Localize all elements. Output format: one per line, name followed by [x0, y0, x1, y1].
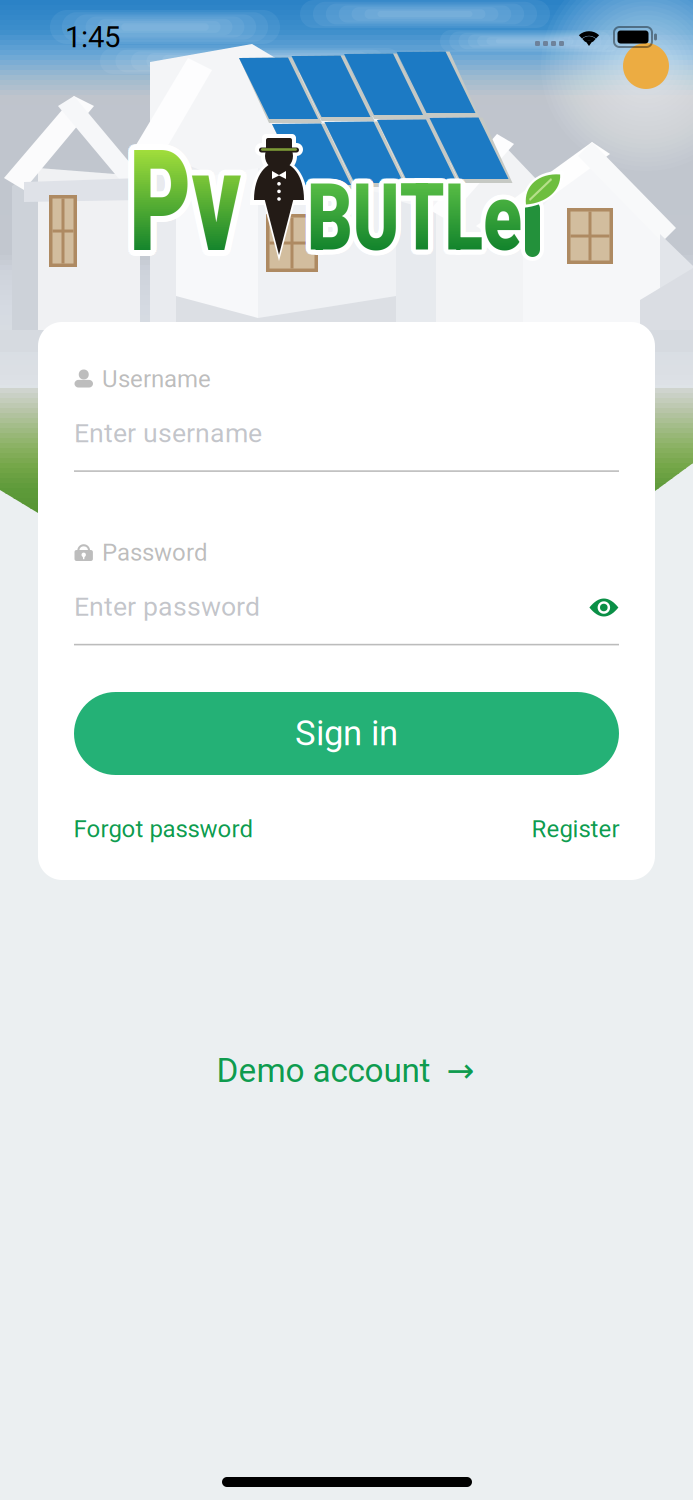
button[interactable]: Sign in — [74, 692, 619, 775]
staticText: BUTLe — [310, 167, 593, 276]
staticText: BUTLe — [303, 166, 586, 275]
staticText: Pv — [134, 115, 300, 281]
staticText: Pv — [125, 124, 291, 289]
button[interactable]: Forgot password — [74, 815, 254, 843]
button[interactable]: Demo account → — [216, 1051, 474, 1090]
staticText: Pv — [124, 122, 290, 288]
staticText: Password — [102, 538, 208, 567]
staticText: Forgot password — [74, 815, 254, 843]
staticText: Pv — [123, 119, 289, 285]
staticText: BUTLe — [311, 166, 594, 275]
staticText: BUTLe — [310, 159, 593, 268]
staticText: 1:45 — [65, 20, 120, 54]
staticText: BUTLe — [305, 168, 588, 277]
button[interactable]: Register — [531, 815, 619, 843]
staticText: Enter password — [74, 591, 260, 622]
staticText: Pv — [125, 114, 291, 280]
staticText: BUTLe — [307, 168, 590, 277]
staticText: Pv — [134, 122, 300, 288]
staticText: BUTLe — [305, 158, 588, 268]
staticText: BUTLe — [307, 158, 590, 267]
staticText: BUTLe — [302, 164, 585, 274]
staticText: Pv — [131, 125, 297, 290]
staticText: Pv — [131, 113, 297, 279]
staticText: BUTLe — [308, 168, 591, 277]
staticText: BUTLe — [311, 160, 594, 269]
staticText: BUTLe — [302, 161, 585, 271]
staticText: Sign in — [295, 713, 398, 754]
staticText: Pv — [135, 119, 301, 285]
staticText: BUTLe — [304, 167, 587, 276]
staticText: BUTLe — [312, 163, 595, 272]
staticText: BUTLe — [304, 159, 587, 268]
staticText: BUTLe — [303, 160, 586, 269]
staticText: Pv — [129, 113, 295, 279]
button[interactable]: Show password — [589, 599, 618, 616]
staticText: Pv — [135, 121, 301, 286]
staticText: Pv — [127, 113, 293, 279]
staticText: Demo account → — [216, 1051, 474, 1090]
staticText: Pv — [123, 121, 289, 286]
staticText: BUTLe — [312, 161, 595, 271]
staticText: Enter username — [74, 418, 262, 449]
staticText: Pv — [127, 125, 293, 290]
staticText: Register — [531, 815, 619, 843]
staticText: Pv — [129, 125, 295, 291]
staticText: Pv — [124, 115, 290, 281]
staticText: Pv — [123, 117, 289, 283]
staticText: Pv — [132, 124, 298, 289]
staticText: Pv — [132, 114, 298, 280]
staticText: BUTLe — [308, 158, 591, 268]
staticText: Pv — [135, 117, 301, 283]
staticText: Username — [102, 365, 211, 393]
staticText: BUTLe — [312, 164, 595, 274]
staticText: BUTLe — [302, 163, 585, 272]
